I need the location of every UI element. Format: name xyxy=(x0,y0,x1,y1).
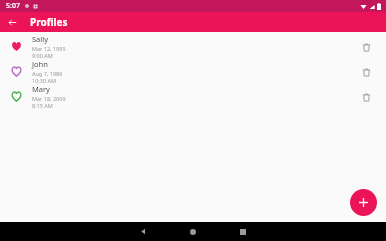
button[interactable]: John xyxy=(0,59,386,84)
staticText: Aug 7, 1986 xyxy=(32,70,63,77)
button[interactable]: Back xyxy=(4,14,20,30)
button[interactable]: Delete Mary xyxy=(358,89,374,105)
staticText: Mar 18, 2009 xyxy=(32,95,66,102)
button[interactable]: Recent apps xyxy=(233,222,253,241)
button[interactable]: Home xyxy=(183,222,203,241)
staticText: John xyxy=(32,59,48,69)
button[interactable]: Back xyxy=(133,222,153,241)
button[interactable]: Sally xyxy=(0,34,386,59)
staticText: Mar 12, 1995 xyxy=(32,45,66,52)
staticText: 8:15 AM xyxy=(32,102,53,109)
staticText: Sally xyxy=(32,34,49,44)
staticText: Profiles xyxy=(30,15,68,29)
staticText: 9:00 AM xyxy=(32,52,53,59)
button[interactable]: Delete Sally xyxy=(358,39,374,55)
button[interactable]: Add profile xyxy=(350,189,377,216)
staticText: 10:30 AM xyxy=(32,77,56,84)
staticText: 5:07 xyxy=(6,1,20,11)
button[interactable]: Delete John xyxy=(358,64,374,80)
button[interactable]: Mary xyxy=(0,84,386,109)
staticText: Mary xyxy=(32,84,50,94)
